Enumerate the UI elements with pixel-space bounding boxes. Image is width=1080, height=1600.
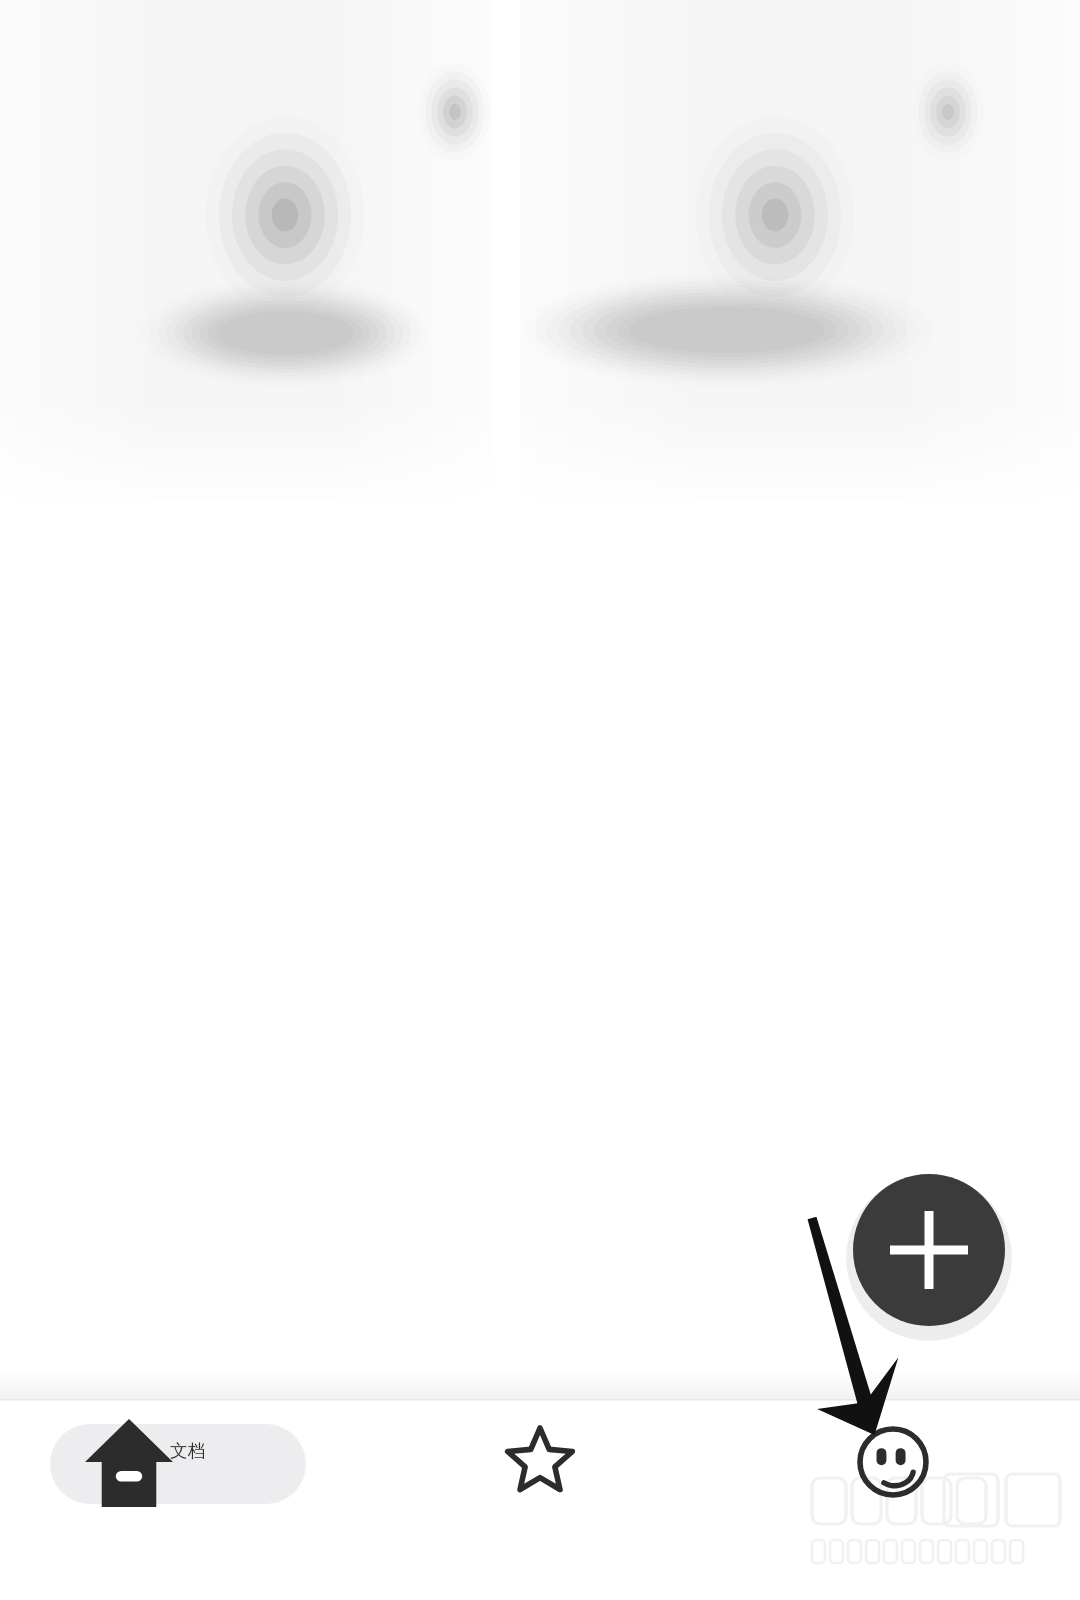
button[interactable]: 文档卡片 1 [0, 0, 492, 500]
button[interactable]: 收藏 [460, 1404, 620, 1524]
button[interactable]: 新建 [853, 1174, 1005, 1326]
button[interactable]: 文档卡片 2 [520, 0, 1080, 500]
button[interactable]: 我的 [813, 1404, 973, 1524]
staticText: 文档 [170, 1440, 290, 1490]
button[interactable]: 文档 [50, 1424, 306, 1504]
